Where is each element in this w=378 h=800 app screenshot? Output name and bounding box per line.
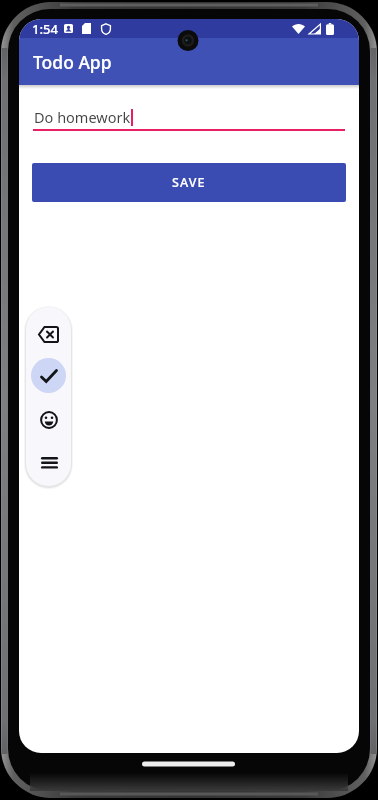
button[interactable] — [35, 449, 63, 477]
button[interactable] — [31, 358, 66, 393]
button[interactable]: SAVE — [32, 163, 346, 202]
button[interactable] — [34, 320, 63, 349]
staticText: Do homework — [34, 107, 131, 127]
staticText: SAVE — [172, 174, 206, 191]
staticText: 1:54 — [32, 20, 58, 38]
staticText: Todo App — [33, 50, 112, 74]
button[interactable] — [35, 406, 63, 434]
button[interactable]: Do homework — [33, 107, 345, 131]
